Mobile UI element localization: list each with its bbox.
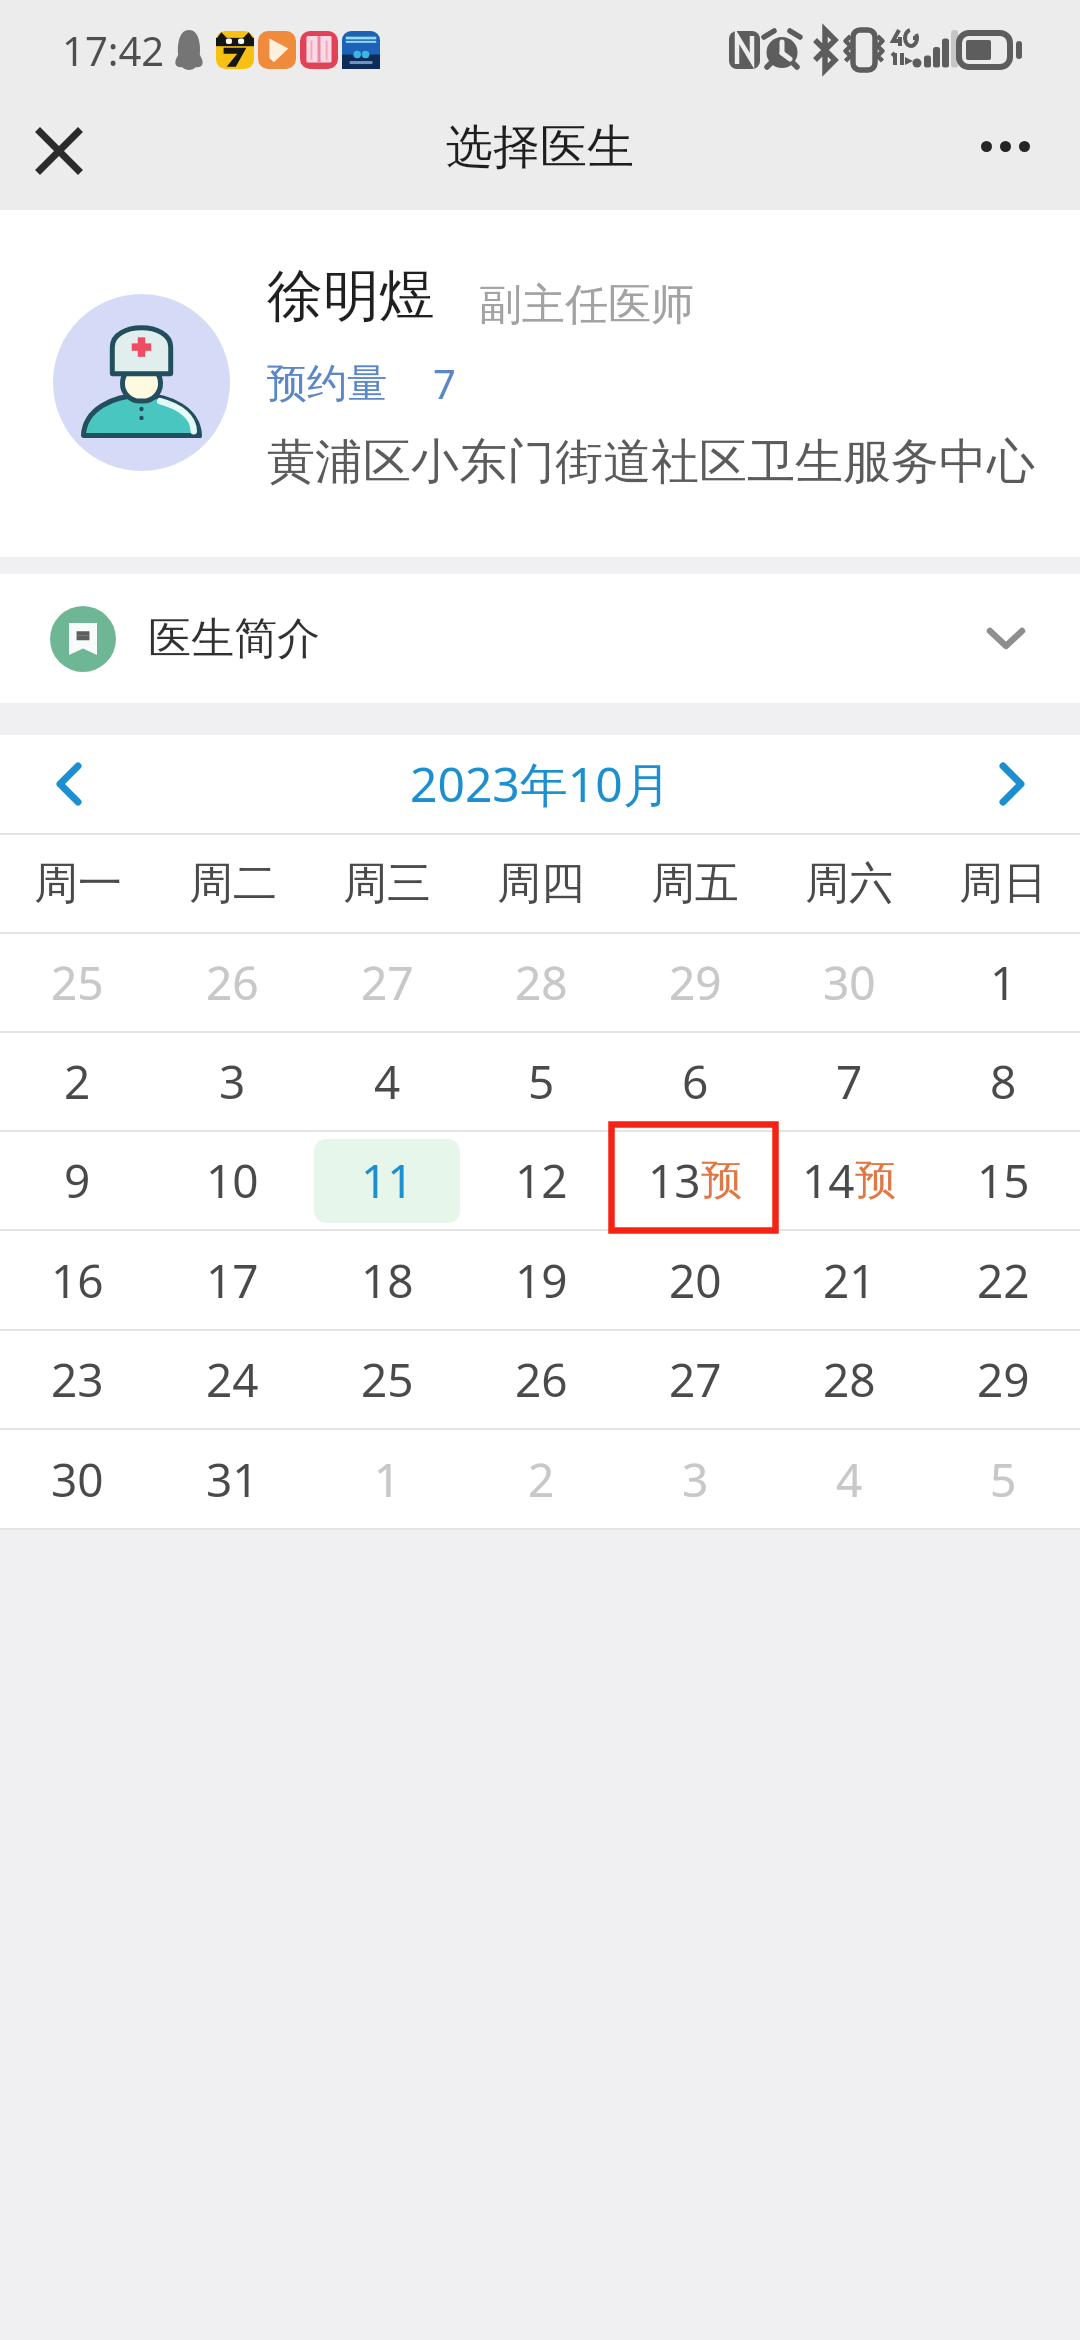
button[interactable]: 8 [926,1033,1080,1130]
staticText: 3 [219,1050,246,1113]
staticText: 12 [515,1149,568,1212]
staticText: 18 [361,1249,414,1312]
staticText: 2 [528,1448,555,1511]
button[interactable]: 3 [155,1033,310,1130]
button[interactable]: 25 [0,934,155,1031]
staticText: 2 [64,1050,91,1113]
staticText: 21 [823,1249,876,1312]
button[interactable]: 5 [464,1033,618,1130]
staticText: 周一 [34,856,122,911]
button[interactable]: 14 [772,1132,926,1229]
button[interactable]: 7 [772,1033,926,1130]
button[interactable]: 27 [310,934,464,1031]
staticText: 周日 [959,856,1047,911]
staticText: 选择医生 [446,118,634,177]
staticText: 14 [802,1149,855,1212]
staticText: 7 [836,1050,863,1113]
staticText: 17 [206,1249,259,1312]
staticText: 15 [977,1149,1030,1212]
button[interactable]: More options [963,104,1047,188]
button[interactable]: 2 [0,1033,155,1130]
button[interactable]: 28 [464,934,618,1031]
staticText: 6 [682,1050,709,1113]
staticText: 31 [206,1448,259,1511]
button[interactable]: 24 [155,1331,310,1428]
button[interactable]: 21 [772,1231,926,1329]
staticText: 30 [51,1448,104,1511]
staticText: 8 [990,1050,1017,1113]
staticText: 28 [515,951,568,1014]
button[interactable]: 17 [155,1231,310,1329]
button[interactable]: Next month [943,735,1080,833]
button[interactable]: 29 [926,1331,1080,1428]
button[interactable]: 13 [618,1132,772,1229]
button[interactable]: 26 [464,1331,618,1428]
button[interactable]: Close [23,115,95,187]
staticText: 徐明煜 [267,261,435,332]
button[interactable]: 25 [310,1331,464,1428]
staticText: 预 [701,1155,742,1207]
button[interactable]: 20 [618,1231,772,1329]
staticText: 周三 [343,856,431,911]
button[interactable]: 16 [0,1231,155,1329]
staticText: 周六 [805,856,893,911]
button[interactable]: 28 [772,1331,926,1428]
button[interactable]: Previous month [0,735,137,833]
staticText: 24 [206,1348,259,1411]
staticText: 4 [374,1050,401,1113]
staticText: 副主任医师 [479,278,694,332]
staticText: 27 [669,1348,722,1411]
staticText: 23 [51,1348,104,1411]
staticText: 16 [51,1249,104,1312]
staticText: 预约量 [267,358,387,408]
button[interactable]: 9 [0,1132,155,1229]
staticText: 1 [990,951,1017,1014]
button[interactable]: 1 [926,934,1080,1031]
staticText: 7 [433,356,456,410]
staticText: 9 [64,1149,91,1212]
staticText: 30 [823,951,876,1014]
button[interactable]: 22 [926,1231,1080,1329]
staticText: 19 [515,1249,568,1312]
staticText: 10 [206,1149,259,1212]
button[interactable]: 2 [464,1430,618,1528]
button[interactable]: 26 [155,934,310,1031]
staticText: 17:42 [62,23,165,77]
staticText: 11 [361,1149,414,1212]
staticText: 黄浦区小东门街道社区卫生服务中心 [267,432,1035,492]
staticText: 26 [515,1348,568,1411]
staticText: 28 [823,1348,876,1411]
button[interactable]: 6 [618,1033,772,1130]
button[interactable]: 30 [0,1430,155,1528]
staticText: 4 [836,1448,863,1511]
button[interactable]: 30 [772,934,926,1031]
staticText: 3 [682,1448,709,1511]
staticText: 29 [977,1348,1030,1411]
staticText: 1 [374,1448,401,1511]
button[interactable]: 4 [772,1430,926,1528]
button[interactable]: 5 [926,1430,1080,1528]
button[interactable]: 23 [0,1331,155,1428]
staticText: 5 [990,1448,1017,1511]
staticText: 25 [361,1348,414,1411]
button[interactable]: 19 [464,1231,618,1329]
button[interactable]: 4 [310,1033,464,1130]
button[interactable]: 12 [464,1132,618,1229]
button[interactable]: 18 [310,1231,464,1329]
staticText: 13 [648,1149,701,1212]
staticText: 27 [361,951,414,1014]
button[interactable]: 11 [310,1132,464,1229]
button[interactable]: 27 [618,1331,772,1428]
button[interactable]: 3 [618,1430,772,1528]
staticText: 周五 [651,856,739,911]
button[interactable]: 29 [618,934,772,1031]
button[interactable]: 医生简介 [0,574,1080,703]
button[interactable]: 1 [310,1430,464,1528]
button[interactable]: 15 [926,1132,1080,1229]
staticText: 25 [51,951,104,1014]
staticText: 2023年10月 [410,751,671,817]
staticText: 20 [669,1249,722,1312]
button[interactable]: 31 [155,1430,310,1528]
button[interactable]: 10 [155,1132,310,1229]
staticText: 预 [855,1155,896,1207]
